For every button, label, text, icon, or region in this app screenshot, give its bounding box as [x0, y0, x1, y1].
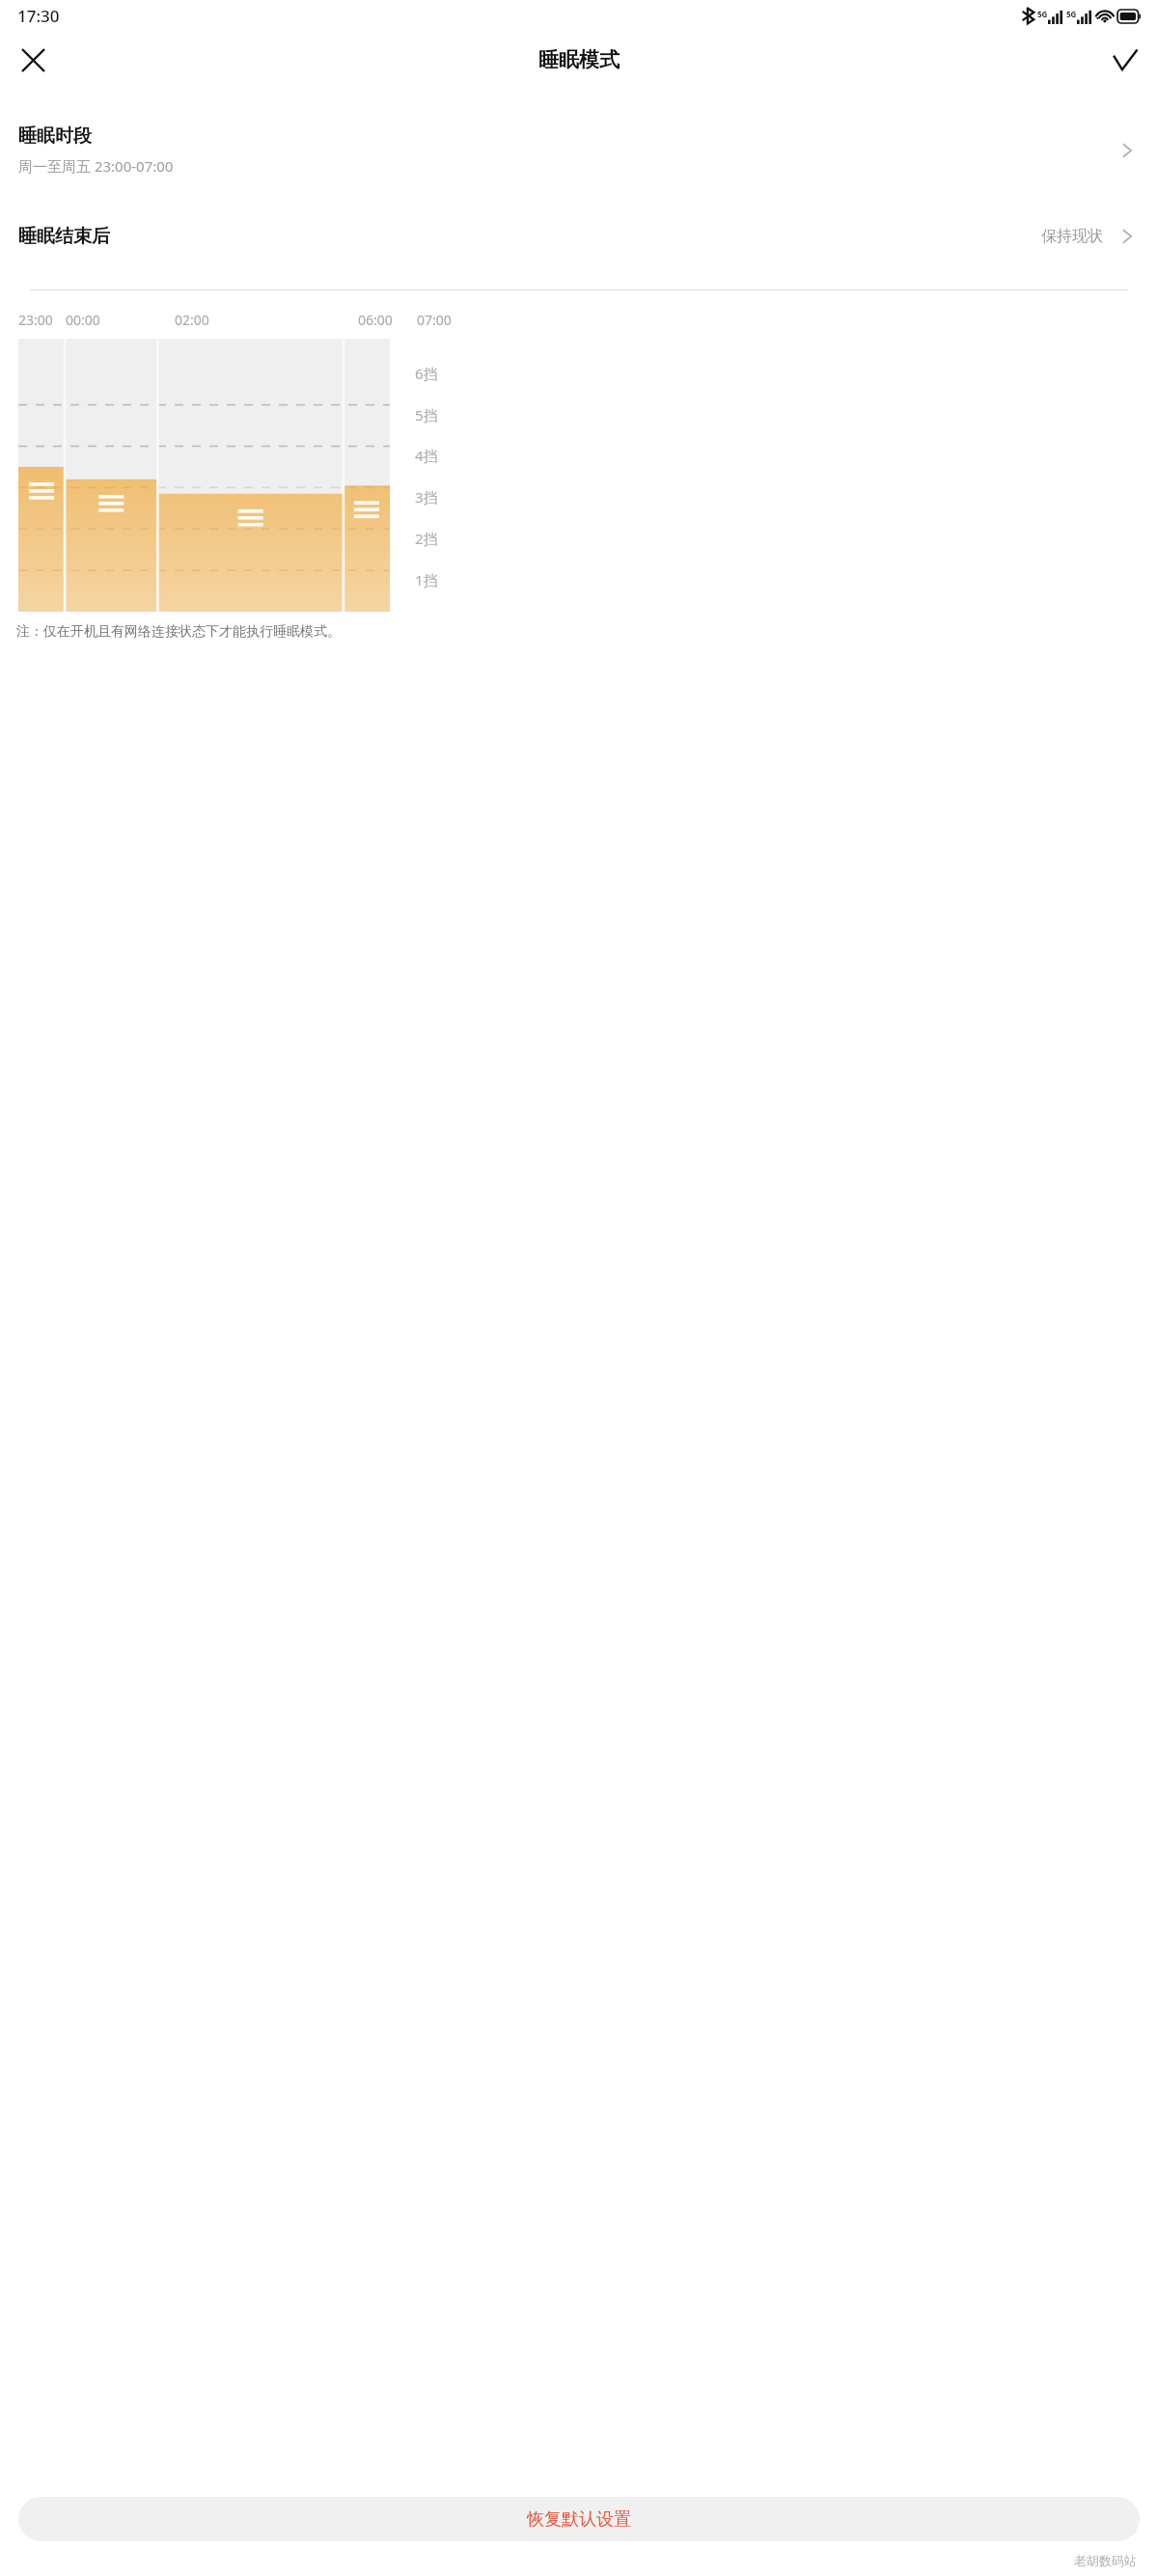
staticText: 4挡 — [415, 446, 438, 465]
staticText: 5G — [1037, 9, 1048, 19]
staticText: 2挡 — [415, 529, 438, 548]
staticText: 07:00 — [417, 311, 452, 329]
staticText: 1挡 — [415, 570, 438, 589]
staticText: 睡眠模式 — [538, 47, 620, 72]
button[interactable]: 睡眠结束后 — [0, 214, 1158, 259]
button[interactable]: Confirm — [1103, 38, 1147, 82]
staticText: 保持现状 — [1041, 227, 1103, 246]
staticText: 睡眠时段 — [18, 124, 92, 148]
staticText: 注：仅在开机且有网络连接状态下才能执行睡眠模式。 — [16, 623, 341, 641]
staticText: 恢复默认设置 — [527, 2508, 631, 2531]
staticText: 00:00 — [66, 311, 100, 329]
staticText: 3挡 — [415, 487, 438, 507]
staticText: 6挡 — [415, 364, 438, 383]
staticText: 5挡 — [415, 405, 438, 425]
staticText: 睡眠结束后 — [18, 225, 1041, 248]
staticText: 5G — [1066, 9, 1077, 19]
staticText: 06:00 — [358, 311, 393, 329]
staticText: 17:30 — [17, 5, 60, 27]
staticText: 老胡数码站 — [1074, 2553, 1137, 2568]
button[interactable]: 恢复默认设置 — [18, 2497, 1140, 2541]
staticText: 02:00 — [175, 311, 209, 329]
button[interactable]: Close — [11, 38, 55, 82]
button[interactable]: 睡眠时段 — [0, 117, 1158, 183]
staticText: 周一至周五 23:00-07:00 — [18, 156, 174, 176]
staticText: 23:00 — [18, 311, 53, 329]
